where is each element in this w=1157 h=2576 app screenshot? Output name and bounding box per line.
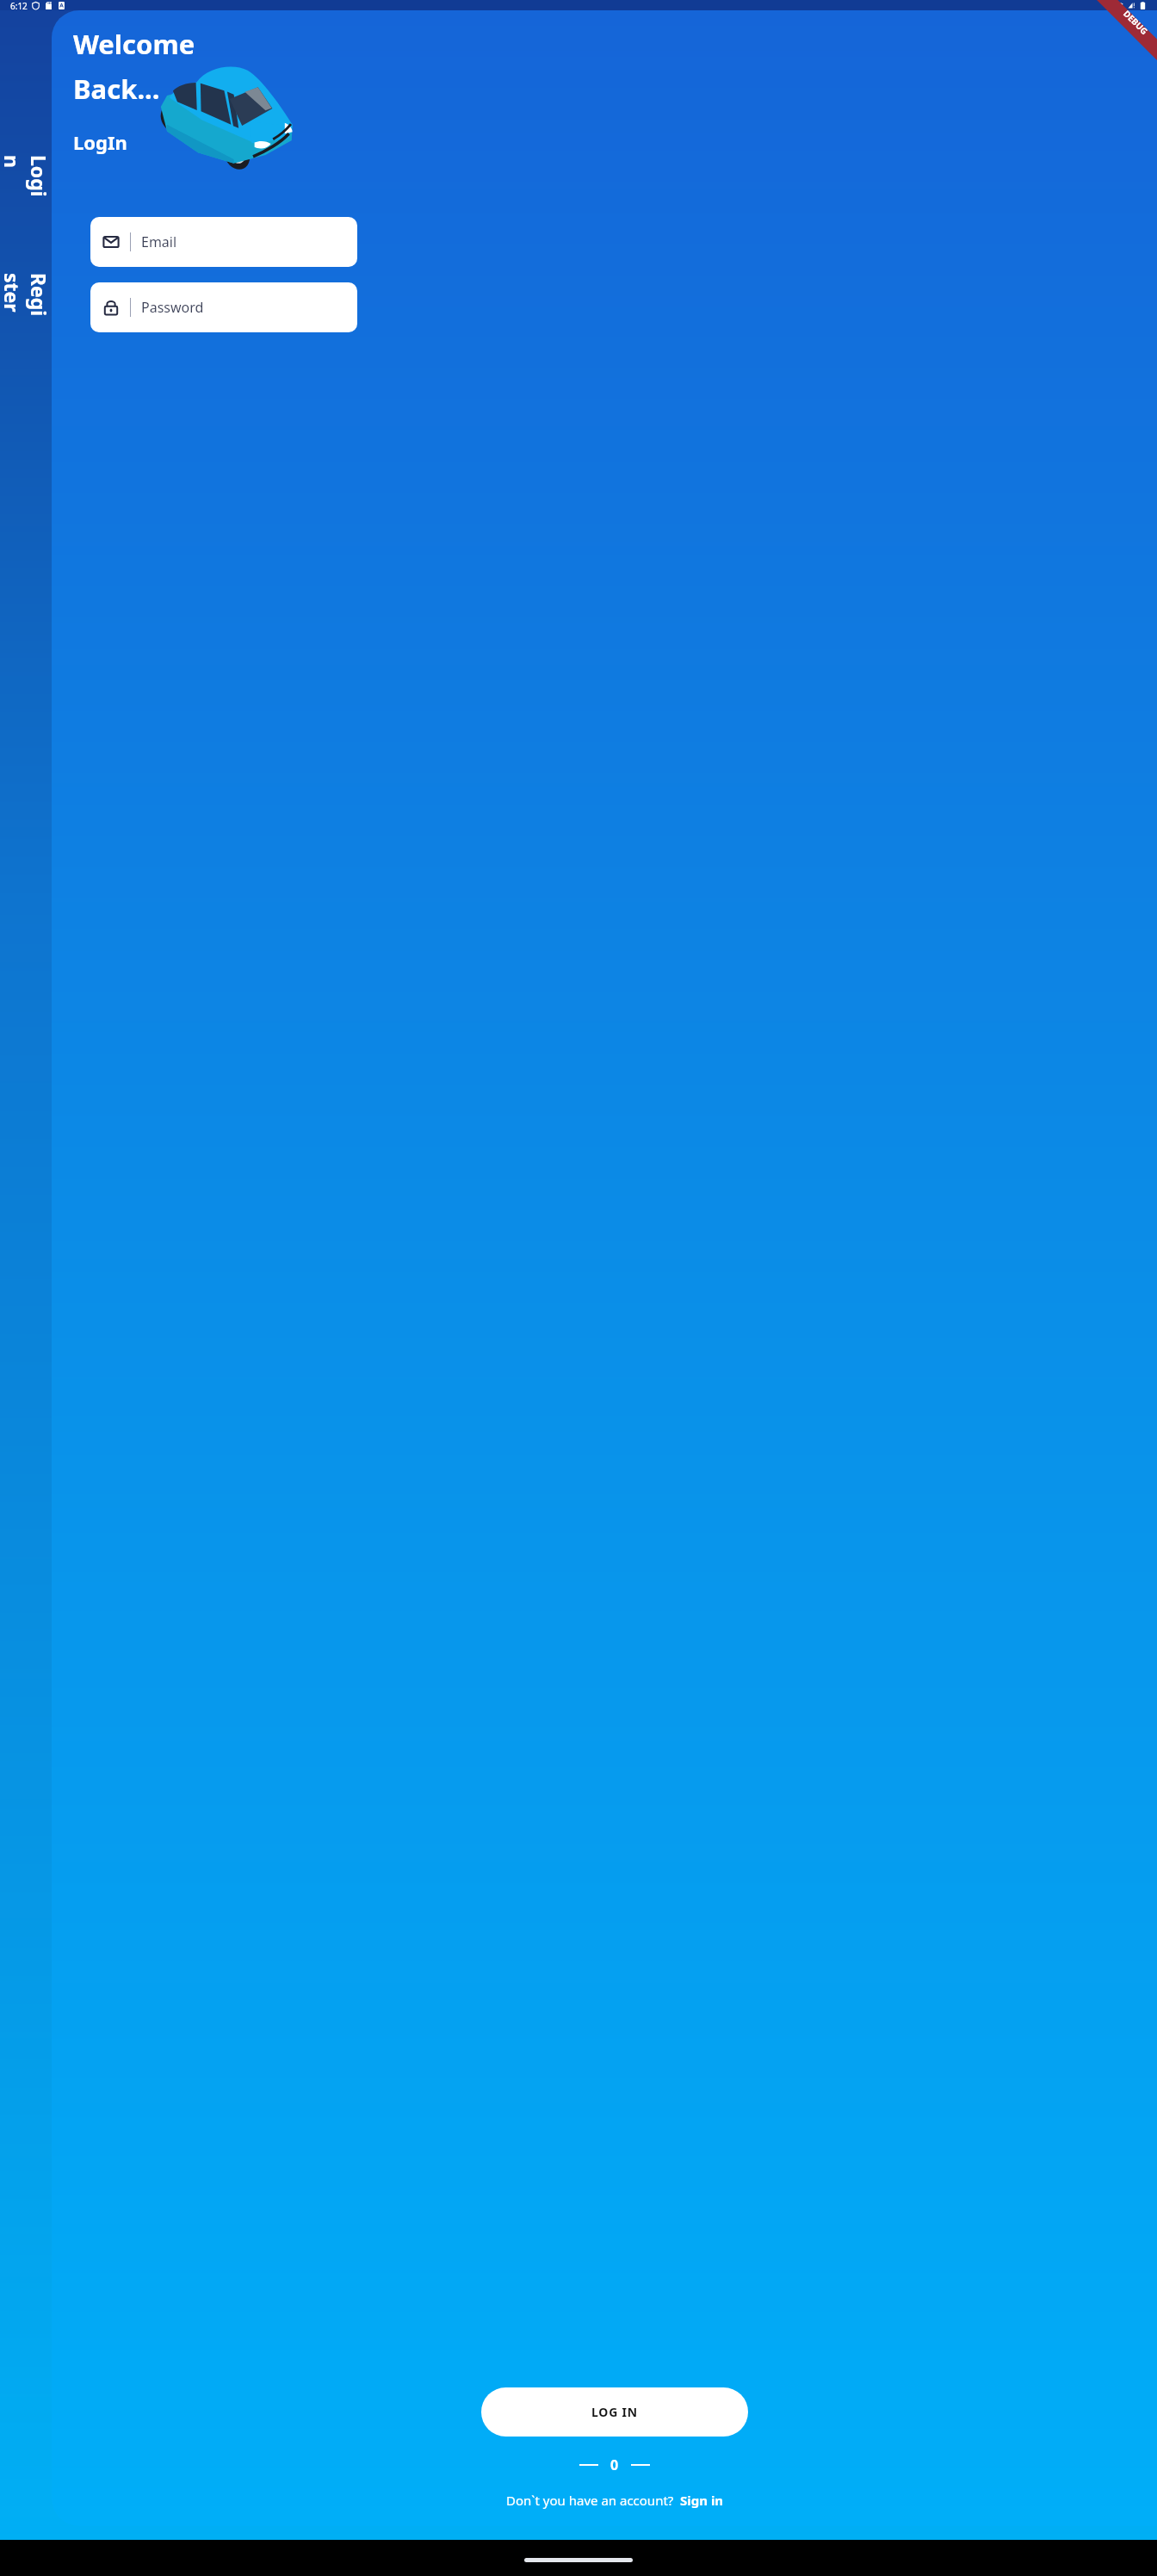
- other: Password: [102, 299, 120, 316]
- staticText: LogIn: [73, 129, 127, 155]
- other: Email: [102, 233, 120, 251]
- button[interactable]: Email: [90, 217, 357, 267]
- staticText: Sign in: [680, 2492, 724, 2509]
- button[interactable]: Password: [90, 282, 357, 332]
- staticText: Welcome: [73, 26, 195, 62]
- button[interactable]: LOG IN: [481, 2387, 748, 2437]
- staticText: Register: [0, 273, 53, 325]
- button[interactable]: Register: [0, 251, 52, 346]
- button[interactable]: Login: [0, 148, 52, 214]
- staticText: 6:12: [10, 0, 28, 10]
- staticText: Password: [141, 298, 204, 317]
- staticText: LOG IN: [591, 2404, 639, 2420]
- staticText: Login: [0, 155, 53, 207]
- button[interactable]: Don`t you have an account?: [506, 2492, 724, 2509]
- staticText: Back...: [73, 71, 160, 107]
- staticText: 0: [610, 2455, 619, 2474]
- staticText: DEBUG: [1121, 7, 1151, 37]
- staticText: Email: [141, 232, 177, 251]
- staticText: Don`t you have an account?: [506, 2492, 674, 2509]
